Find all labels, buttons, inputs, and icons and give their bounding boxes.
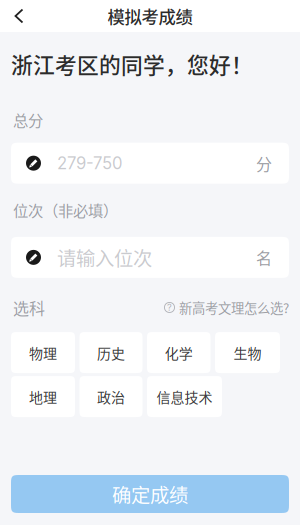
staticText: 生物	[233, 342, 261, 363]
staticText: 分	[256, 152, 272, 175]
staticText: 总分	[13, 108, 43, 131]
button[interactable]: 历史	[79, 332, 142, 373]
staticText: 化学	[165, 342, 193, 363]
button[interactable]: ?	[164, 298, 289, 317]
button[interactable]: 确定成绩	[11, 475, 289, 513]
staticText: 地理	[29, 386, 57, 407]
staticText: 历史	[97, 342, 125, 363]
staticText: 物理	[29, 342, 57, 363]
staticText: 模拟考成绩	[107, 3, 192, 29]
staticText: 确定成绩	[112, 480, 188, 508]
button[interactable]: 化学	[147, 332, 210, 373]
button[interactable]: 地理	[11, 376, 75, 417]
button[interactable]: 物理	[11, 332, 75, 373]
button[interactable]: 279-750	[11, 143, 289, 184]
staticText: 政治	[97, 386, 125, 407]
button[interactable]: 返回	[0, 0, 38, 32]
staticText: ?	[167, 302, 172, 313]
button[interactable]: 政治	[79, 376, 142, 417]
staticText: 浙江考区的同学，您好！	[11, 48, 253, 79]
staticText: 信息技术	[156, 386, 212, 407]
button[interactable]: 请输入位次	[11, 237, 289, 278]
staticText: 位次（非必填）	[13, 199, 118, 221]
staticText: 279-750	[57, 153, 123, 173]
staticText: 请输入位次	[57, 243, 152, 271]
button[interactable]: 信息技术	[147, 376, 222, 417]
staticText: 新高考文理怎么选?	[179, 298, 289, 317]
button[interactable]: 生物	[215, 332, 280, 373]
staticText: 名	[256, 246, 272, 269]
staticText: 选科	[13, 296, 45, 319]
